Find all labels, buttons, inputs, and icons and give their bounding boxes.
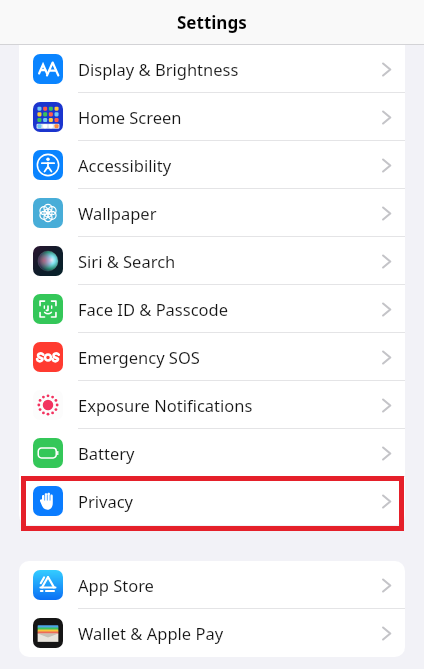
button[interactable]: Display & Brightness (19, 45, 405, 93)
button[interactable]: Accessibility (19, 141, 405, 189)
staticText: Emergency SOS (78, 346, 200, 368)
button[interactable]: Battery (19, 429, 405, 477)
staticText: Display & Brightness (78, 58, 239, 80)
staticText: Face ID & Passcode (78, 298, 229, 320)
staticText: App Store (78, 574, 154, 596)
staticText: Wallet & Apple Pay (78, 622, 224, 644)
staticText: Siri & Search (78, 250, 176, 272)
button[interactable]: Siri & Search (19, 237, 405, 285)
staticText: Accessibility (78, 154, 172, 176)
button[interactable]: Emergency SOS (19, 333, 405, 381)
button[interactable]: Home Screen (19, 93, 405, 141)
button[interactable]: Wallpaper (19, 189, 405, 237)
button[interactable]: Privacy (19, 477, 405, 525)
staticText: Privacy (78, 490, 134, 512)
button[interactable]: Exposure Notifications (19, 381, 405, 429)
button[interactable]: Wallet & Apple Pay (19, 609, 405, 657)
staticText: Exposure Notifications (78, 394, 253, 416)
staticText: Wallpaper (78, 202, 157, 224)
staticText: Settings (177, 11, 247, 34)
staticText: Home Screen (78, 106, 182, 128)
button[interactable]: Face ID & Passcode (19, 285, 405, 333)
button[interactable]: App Store (19, 561, 405, 609)
staticText: Battery (78, 442, 135, 464)
